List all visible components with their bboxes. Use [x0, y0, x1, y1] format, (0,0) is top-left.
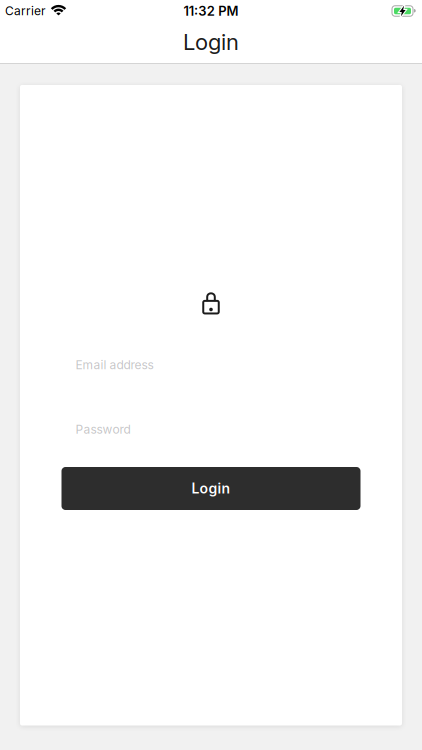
- button[interactable]: Email address: [20, 355, 402, 375]
- staticText: Login: [191, 480, 230, 497]
- staticText: Email address: [75, 358, 153, 372]
- staticText: 11:32 PM: [183, 3, 239, 19]
- staticText: Password: [75, 422, 130, 437]
- button[interactable]: Login: [61, 467, 360, 510]
- button[interactable]: Password: [20, 419, 402, 439]
- staticText: Login: [183, 29, 239, 55]
- staticText: Carrier: [5, 4, 46, 18]
